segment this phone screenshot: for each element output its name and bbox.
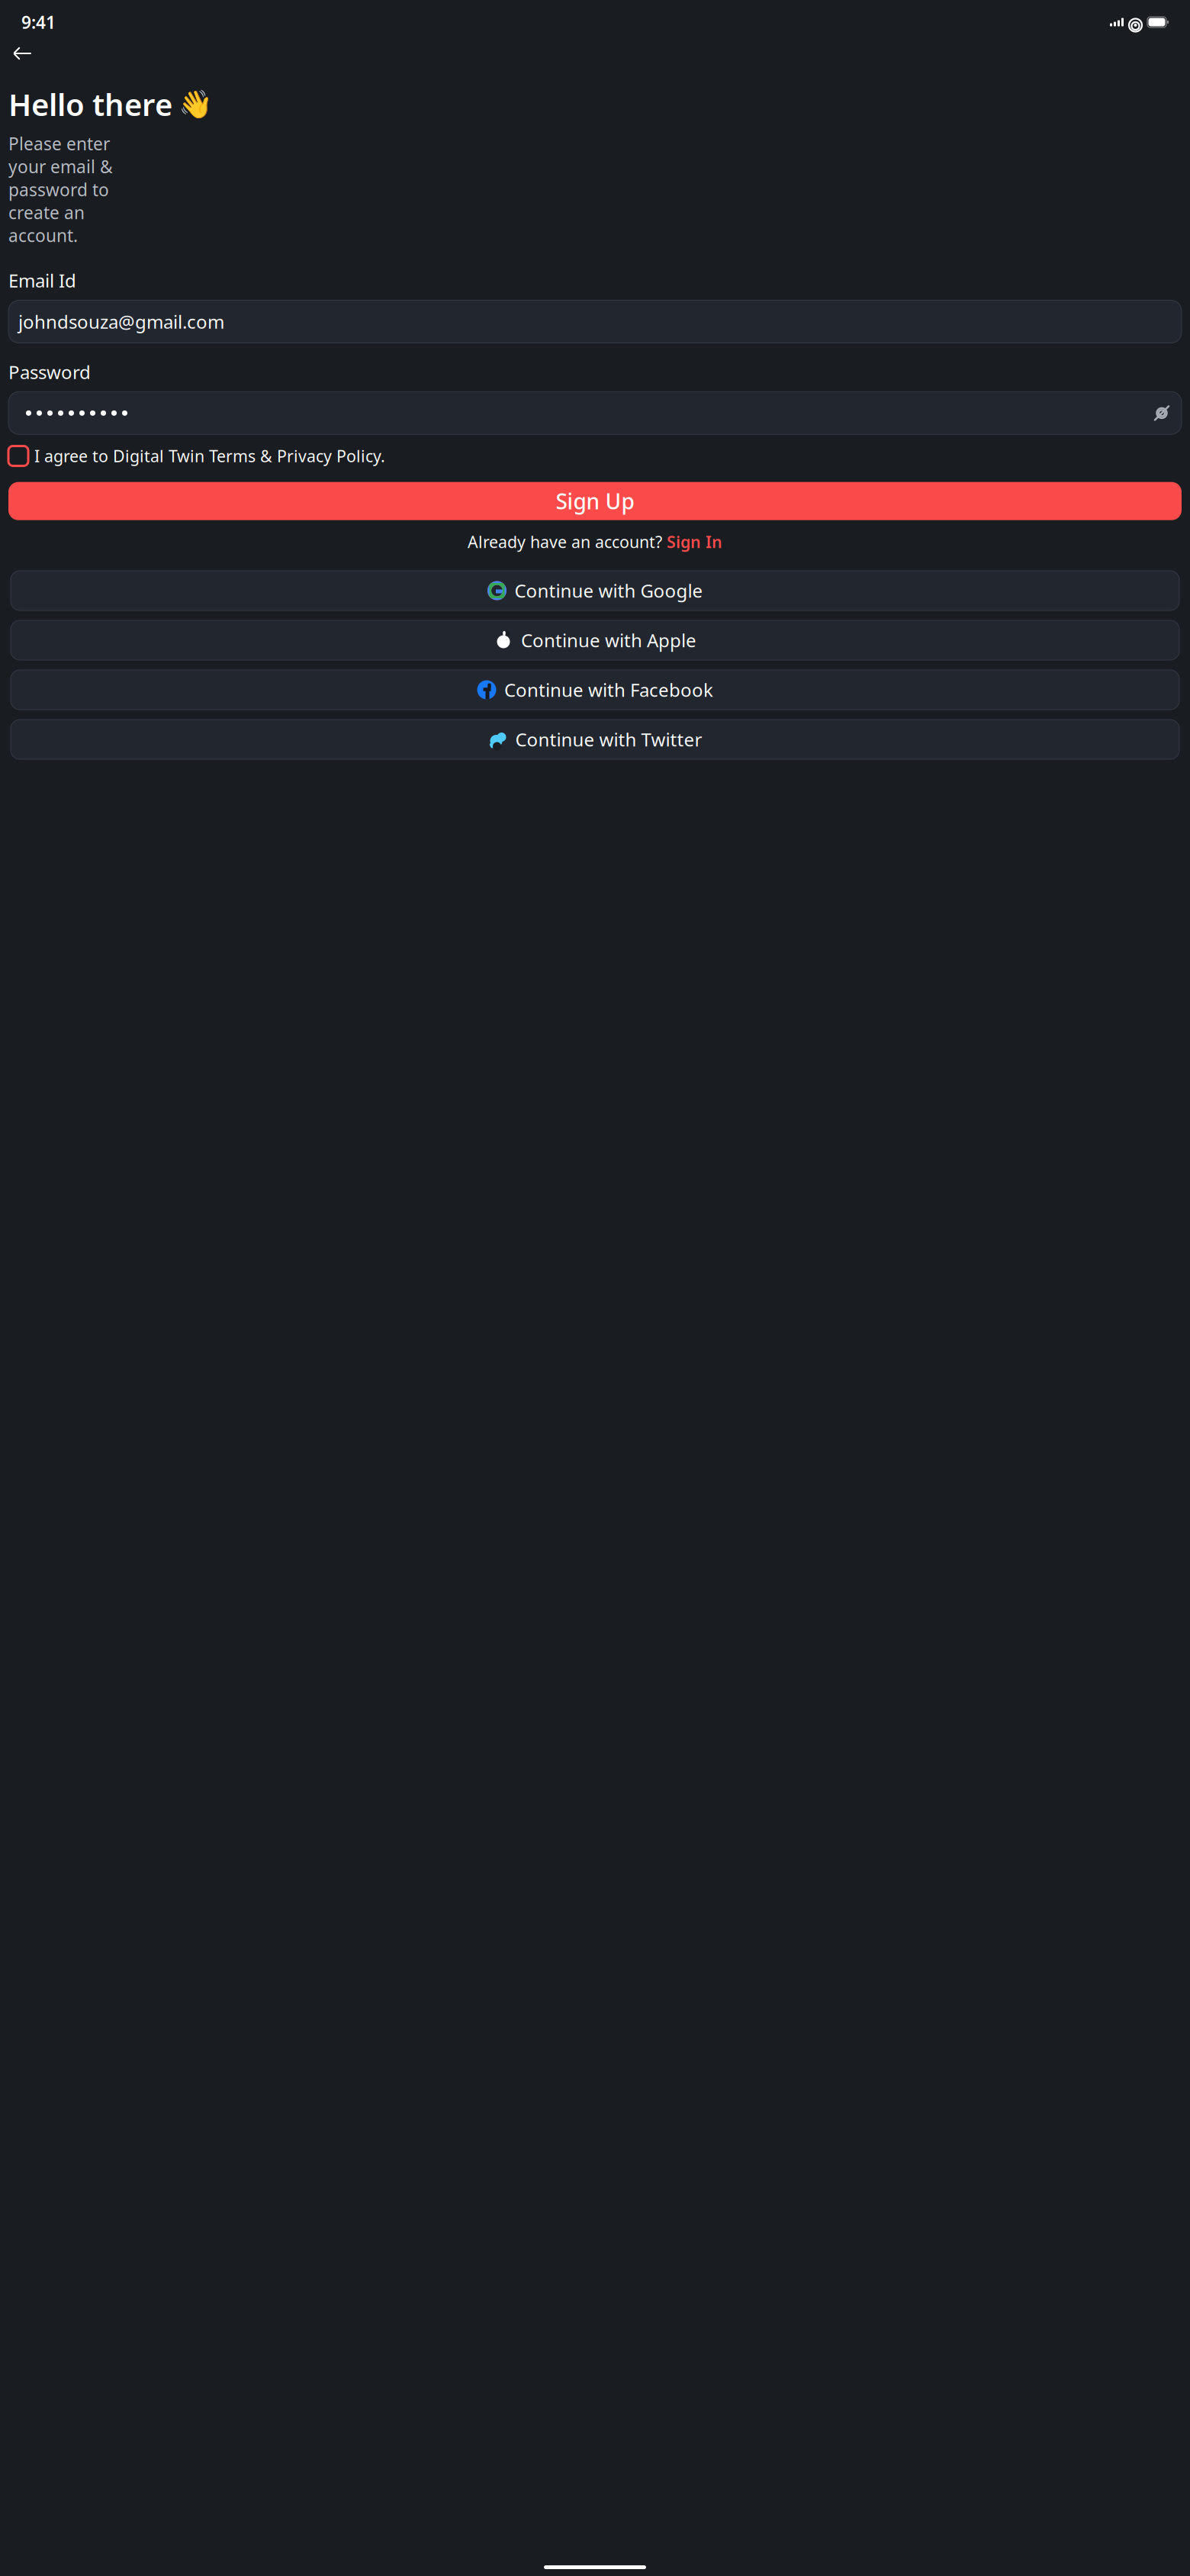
- staticText: Continue with Google: [515, 578, 703, 603]
- staticText: Sign Up: [556, 487, 634, 515]
- button[interactable]: Continue with Facebook: [11, 670, 1179, 710]
- button[interactable]: [8, 392, 1182, 434]
- staticText: johndsouza@gmail.com: [18, 309, 224, 334]
- staticText: Already have an account?: [468, 531, 662, 552]
- button[interactable]: I agree to Digital Twin Terms & Privacy …: [8, 445, 1190, 467]
- button[interactable]: Continue with Apple: [11, 620, 1179, 660]
- button[interactable]: Continue with Google: [11, 571, 1179, 610]
- staticText: I agree to Digital Twin Terms & Privacy …: [34, 445, 385, 467]
- staticText: Continue with Twitter: [515, 727, 702, 752]
- staticText: Continue with Apple: [521, 628, 696, 652]
- button[interactable]: Sign In: [667, 531, 722, 552]
- staticText: Continue with Facebook: [504, 678, 713, 702]
- staticText: 9:41: [21, 11, 56, 34]
- button[interactable]: johndsouza@gmail.com: [8, 300, 1182, 343]
- staticText: Sign In: [667, 531, 722, 552]
- staticText: Please enter your email & password to cr…: [8, 132, 113, 247]
- button[interactable]: Back: [6, 38, 40, 69]
- button[interactable]: Sign Up: [8, 482, 1182, 520]
- staticText: Email Id: [8, 268, 76, 293]
- staticText: 👋: [178, 89, 213, 120]
- staticText: Password: [8, 360, 91, 384]
- staticText: Hello there: [8, 84, 172, 124]
- button[interactable]: Continue with Twitter: [11, 720, 1179, 759]
